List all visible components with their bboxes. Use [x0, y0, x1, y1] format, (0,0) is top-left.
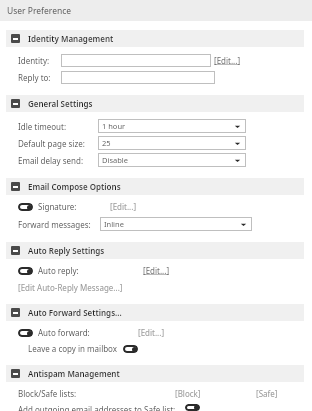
staticText: Auto Forward Settings... [28, 307, 122, 318]
staticText: Auto Reply Settings [28, 245, 105, 256]
staticText: 25 [102, 138, 111, 148]
staticText: Leave a copy in mailbox [28, 343, 118, 354]
staticText: Forward messages: [18, 219, 91, 230]
staticText: General Settings [28, 98, 93, 109]
other: Collapse Identity Management [11, 34, 20, 43]
button[interactable] [61, 54, 211, 67]
other: Collapse Antispam Management [11, 369, 20, 378]
button[interactable]: [Edit Auto-Reply Message...] [18, 282, 123, 293]
staticText: Inline [104, 219, 124, 229]
button[interactable]: Inline [100, 217, 252, 231]
button[interactable]: Collapse Auto Forward Settings... [6, 304, 304, 321]
staticText: Auto reply: [38, 265, 79, 276]
button[interactable]: Auto forward toggle [18, 329, 33, 337]
staticText: User Preference [7, 5, 72, 17]
button[interactable]: Disable [98, 153, 246, 167]
staticText: Auto forward: [38, 327, 90, 338]
button[interactable]: [Block] [175, 388, 201, 399]
button[interactable] [61, 71, 215, 84]
button[interactable]: Collapse Antispam Management [6, 365, 304, 382]
button[interactable]: [Edit...] [110, 201, 137, 212]
button[interactable]: 1 hour [98, 119, 246, 133]
button[interactable]: Collapse Identity Management [6, 30, 304, 47]
button[interactable]: Auto reply toggle [18, 267, 33, 275]
button[interactable]: 25 [98, 136, 246, 150]
staticText: Default page size: [18, 138, 85, 149]
staticText: Add outgoing email addresses to Safe lis… [18, 404, 176, 411]
staticText: Block/Safe lists: [18, 388, 77, 399]
staticText: Identity: [18, 55, 50, 66]
staticText: 1 hour [102, 121, 126, 131]
staticText: Reply to: [18, 72, 51, 83]
button[interactable]: [Edit...] [214, 55, 241, 66]
staticText: Disable [102, 155, 128, 165]
other: Collapse General Settings [11, 99, 20, 108]
staticText: Signature: [38, 201, 77, 212]
staticText: Email delay send: [18, 155, 84, 166]
button[interactable]: Leave a copy in mailbox toggle [123, 345, 138, 353]
staticText: Email Compose Options [28, 181, 121, 192]
staticText: Antispam Management [28, 368, 120, 379]
button[interactable]: [Edit...] [143, 265, 170, 276]
other: Collapse Auto Forward Settings... [11, 308, 20, 317]
other: Collapse Email Compose Options [11, 182, 20, 191]
staticText: Identity Management [28, 33, 114, 44]
button[interactable]: Collapse General Settings [6, 95, 304, 112]
button[interactable]: Collapse Email Compose Options [6, 178, 304, 195]
button[interactable]: Signature toggle [18, 203, 33, 211]
button[interactable]: Collapse Auto Reply Settings [6, 242, 304, 259]
staticText: Idle timeout: [18, 121, 67, 132]
button[interactable]: Add outgoing email addresses to Safe lis… [185, 404, 200, 411]
button[interactable]: [Safe] [256, 388, 278, 399]
button[interactable]: [Edit...] [138, 327, 165, 338]
other: Collapse Auto Reply Settings [11, 246, 20, 255]
